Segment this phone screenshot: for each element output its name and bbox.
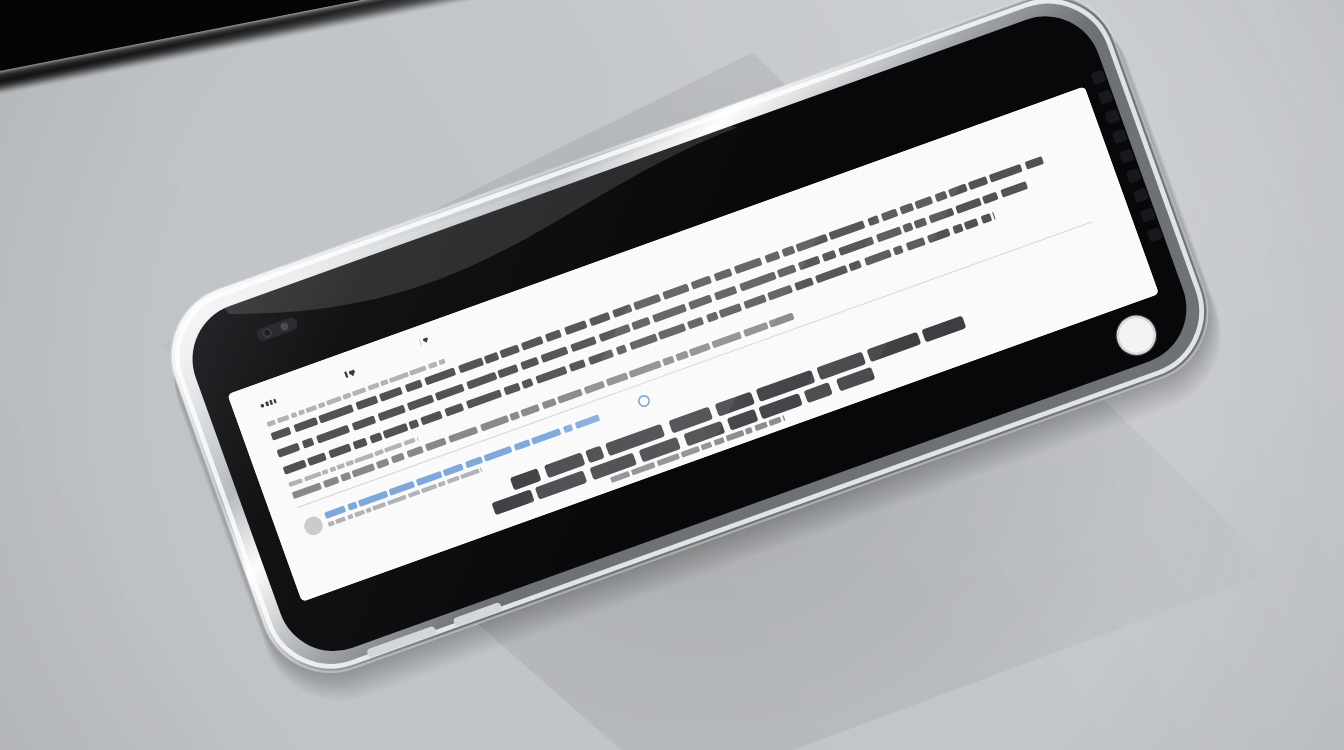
button[interactable]: Phone showing an article on a grey surfa… (0, 0, 1344, 750)
